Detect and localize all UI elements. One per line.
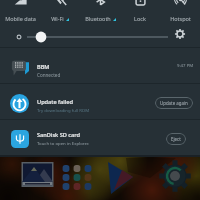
staticText: 9:47 PM [177, 62, 194, 68]
button[interactable]: Lock [120, 0, 160, 13]
staticText: Hotspot [170, 15, 191, 22]
staticText: Try downloading full ROM [37, 107, 90, 113]
staticText: Bluetooth [85, 15, 111, 22]
button[interactable]: Hotspot [160, 0, 200, 13]
button[interactable]: BBM [0, 48, 200, 83]
staticText: Wi-Fi [51, 15, 64, 22]
staticText: Update failed [37, 98, 73, 106]
button[interactable]: Settings [174, 28, 186, 40]
staticText: Connected [37, 72, 61, 78]
staticText: Touch to open in Explorer. [37, 140, 90, 146]
staticText: Eject [171, 136, 181, 142]
button[interactable]: Wi-Fi [40, 0, 80, 13]
button[interactable]: Update again [155, 97, 193, 109]
button[interactable]: SanDisk SD card [0, 120, 200, 155]
staticText: Mobile data [5, 15, 36, 22]
staticText: SanDisk SD card [37, 131, 80, 139]
staticText: Lock [134, 15, 146, 22]
button[interactable]: Bluetooth [80, 0, 120, 13]
staticText: Update again [160, 100, 188, 106]
button[interactable]: Mobile data [0, 0, 40, 13]
button[interactable]: Eject [166, 133, 186, 145]
staticText: BBM [37, 63, 50, 71]
button[interactable]: Update failed [0, 84, 200, 119]
